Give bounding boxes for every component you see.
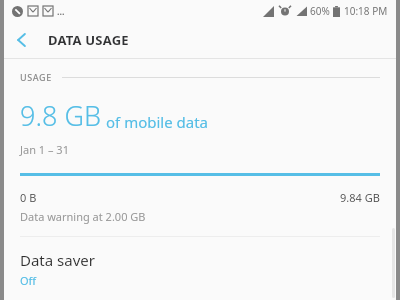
staticText: Jan 1 – 31	[20, 142, 69, 157]
staticText: of mobile data	[106, 112, 209, 132]
staticText: Data warning at 2.00 GB	[20, 209, 146, 224]
staticText: USAGE	[20, 71, 52, 83]
button[interactable]: Back	[4, 22, 40, 58]
staticText: 10:18 PM	[344, 4, 388, 18]
staticText: 60%	[310, 4, 330, 18]
staticText: 9.84 GB	[340, 190, 380, 205]
staticText: Data saver	[20, 250, 95, 270]
staticText: Off	[20, 273, 37, 286]
staticText: DATA USAGE	[48, 31, 129, 49]
staticText: 9.8 GB	[20, 97, 102, 134]
staticText: ...	[57, 5, 65, 17]
button[interactable]: Data saver	[4, 237, 396, 300]
staticText: 0 B	[20, 190, 37, 205]
